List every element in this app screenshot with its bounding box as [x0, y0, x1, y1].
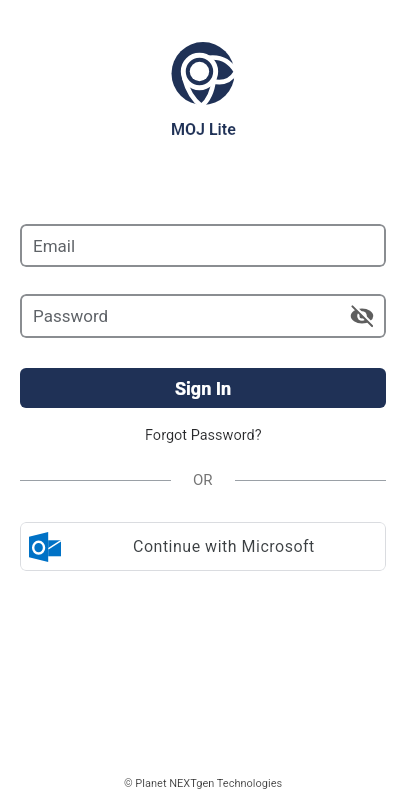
button[interactable]: Continue with Microsoft: [20, 522, 386, 571]
button[interactable]: Forgot Password?: [145, 427, 262, 444]
staticText: © Planet NEXTgen Technologies: [124, 777, 283, 790]
staticText: Sign In: [175, 378, 232, 399]
staticText: Continue with Microsoft: [133, 537, 315, 556]
button[interactable]: Password: [20, 294, 386, 338]
button[interactable]: [345, 299, 379, 333]
staticText: Password: [33, 306, 109, 326]
staticText: OR: [193, 471, 213, 489]
staticText: MOJ Lite: [171, 120, 236, 139]
staticText: Email: [33, 236, 76, 256]
button[interactable]: Sign In: [20, 368, 386, 408]
button[interactable]: Email: [20, 224, 386, 267]
